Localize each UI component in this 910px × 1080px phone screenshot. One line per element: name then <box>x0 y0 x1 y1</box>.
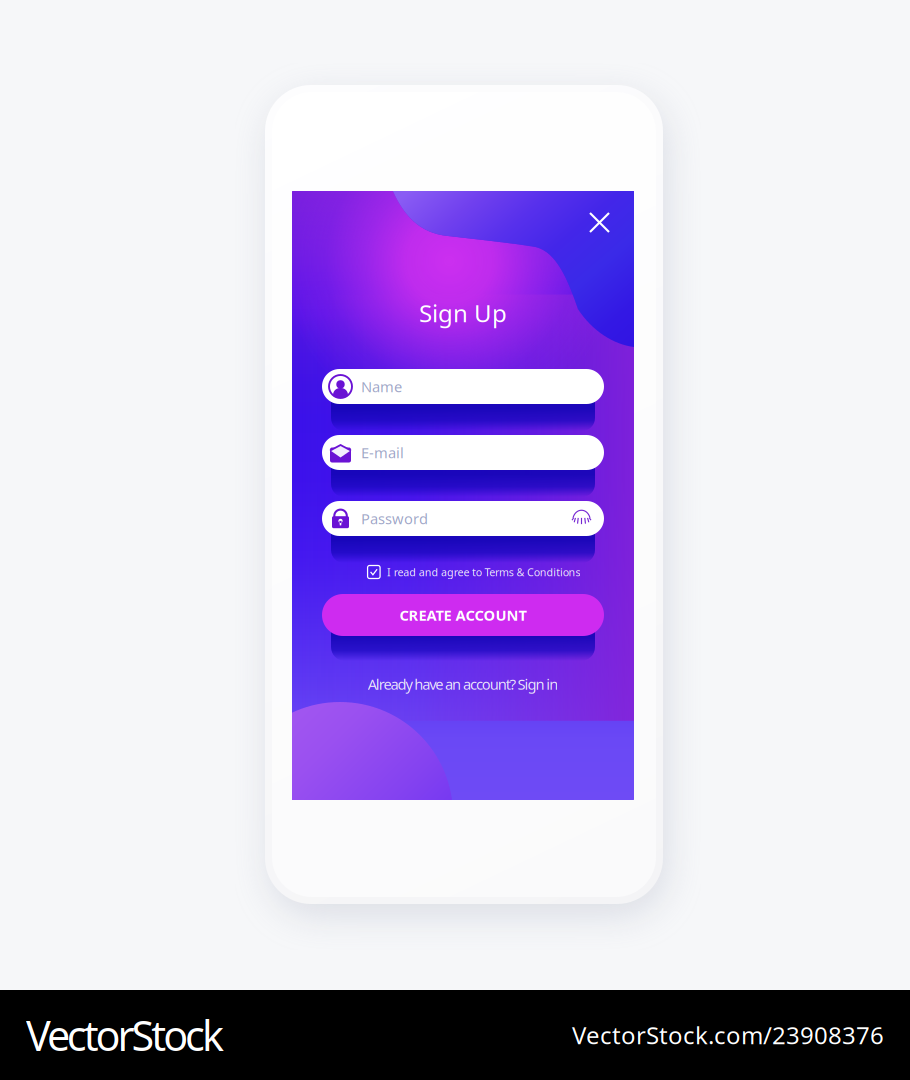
staticText: I read and agree to Terms & Conditions <box>387 565 580 579</box>
button[interactable]: Password <box>322 501 604 536</box>
staticText: Sign Up <box>419 297 507 329</box>
staticText: CREATE ACCOUNT <box>399 605 526 625</box>
button[interactable]: I read and agree to Terms & Conditions <box>303 562 645 582</box>
staticText: VectorStock <box>26 1008 224 1062</box>
staticText: Password <box>361 509 428 528</box>
button[interactable]: Close <box>582 205 617 240</box>
staticText: VectorStock.com/23908376 <box>572 1019 884 1051</box>
staticText: E-mail <box>361 443 404 462</box>
button[interactable]: Already have an account? Sign in <box>292 675 634 693</box>
staticText: Already have an account? Sign in <box>368 674 558 694</box>
button[interactable]: Name <box>322 369 604 404</box>
staticText: Name <box>361 377 402 396</box>
button[interactable]: E-mail <box>322 435 604 470</box>
button[interactable]: CREATE ACCOUNT <box>322 594 604 636</box>
